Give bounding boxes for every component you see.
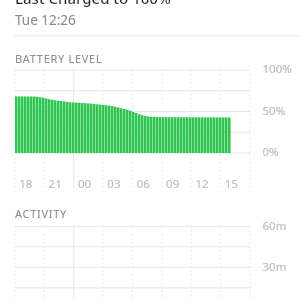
button[interactable]: Battery level chart (0, 44, 300, 194)
button[interactable]: Activity chart (0, 199, 300, 300)
button[interactable]: Last Charged to 100%, Tue 12:26 (0, 0, 300, 35)
